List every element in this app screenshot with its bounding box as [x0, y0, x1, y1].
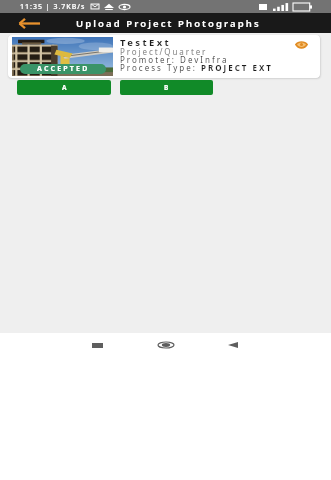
button[interactable]: View photographs: [289, 36, 313, 54]
button[interactable]: Back: [16, 14, 42, 32]
button[interactable]: Home: [152, 337, 180, 353]
staticText: A: [62, 83, 67, 92]
staticText: ACCEPTED: [37, 64, 90, 74]
staticText: Upload Project Photographs: [76, 17, 261, 30]
staticText: TestExt: [120, 36, 172, 49]
staticText: 11:35 | 3.7KB/s: [20, 2, 86, 12]
button[interactable]: A: [17, 80, 111, 95]
staticText: Project/Quarter: [120, 46, 208, 57]
staticText: B: [164, 83, 169, 92]
button[interactable]: Recent apps: [83, 337, 111, 353]
staticText: Process Type:: [120, 62, 201, 73]
staticText: PROJECT EXT: [201, 62, 273, 73]
button[interactable]: B: [120, 80, 213, 95]
button[interactable]: Back: [219, 337, 247, 353]
staticText: Promoter: DevInfra: [120, 54, 229, 65]
button[interactable]: ACCEPTED: [8, 35, 320, 78]
